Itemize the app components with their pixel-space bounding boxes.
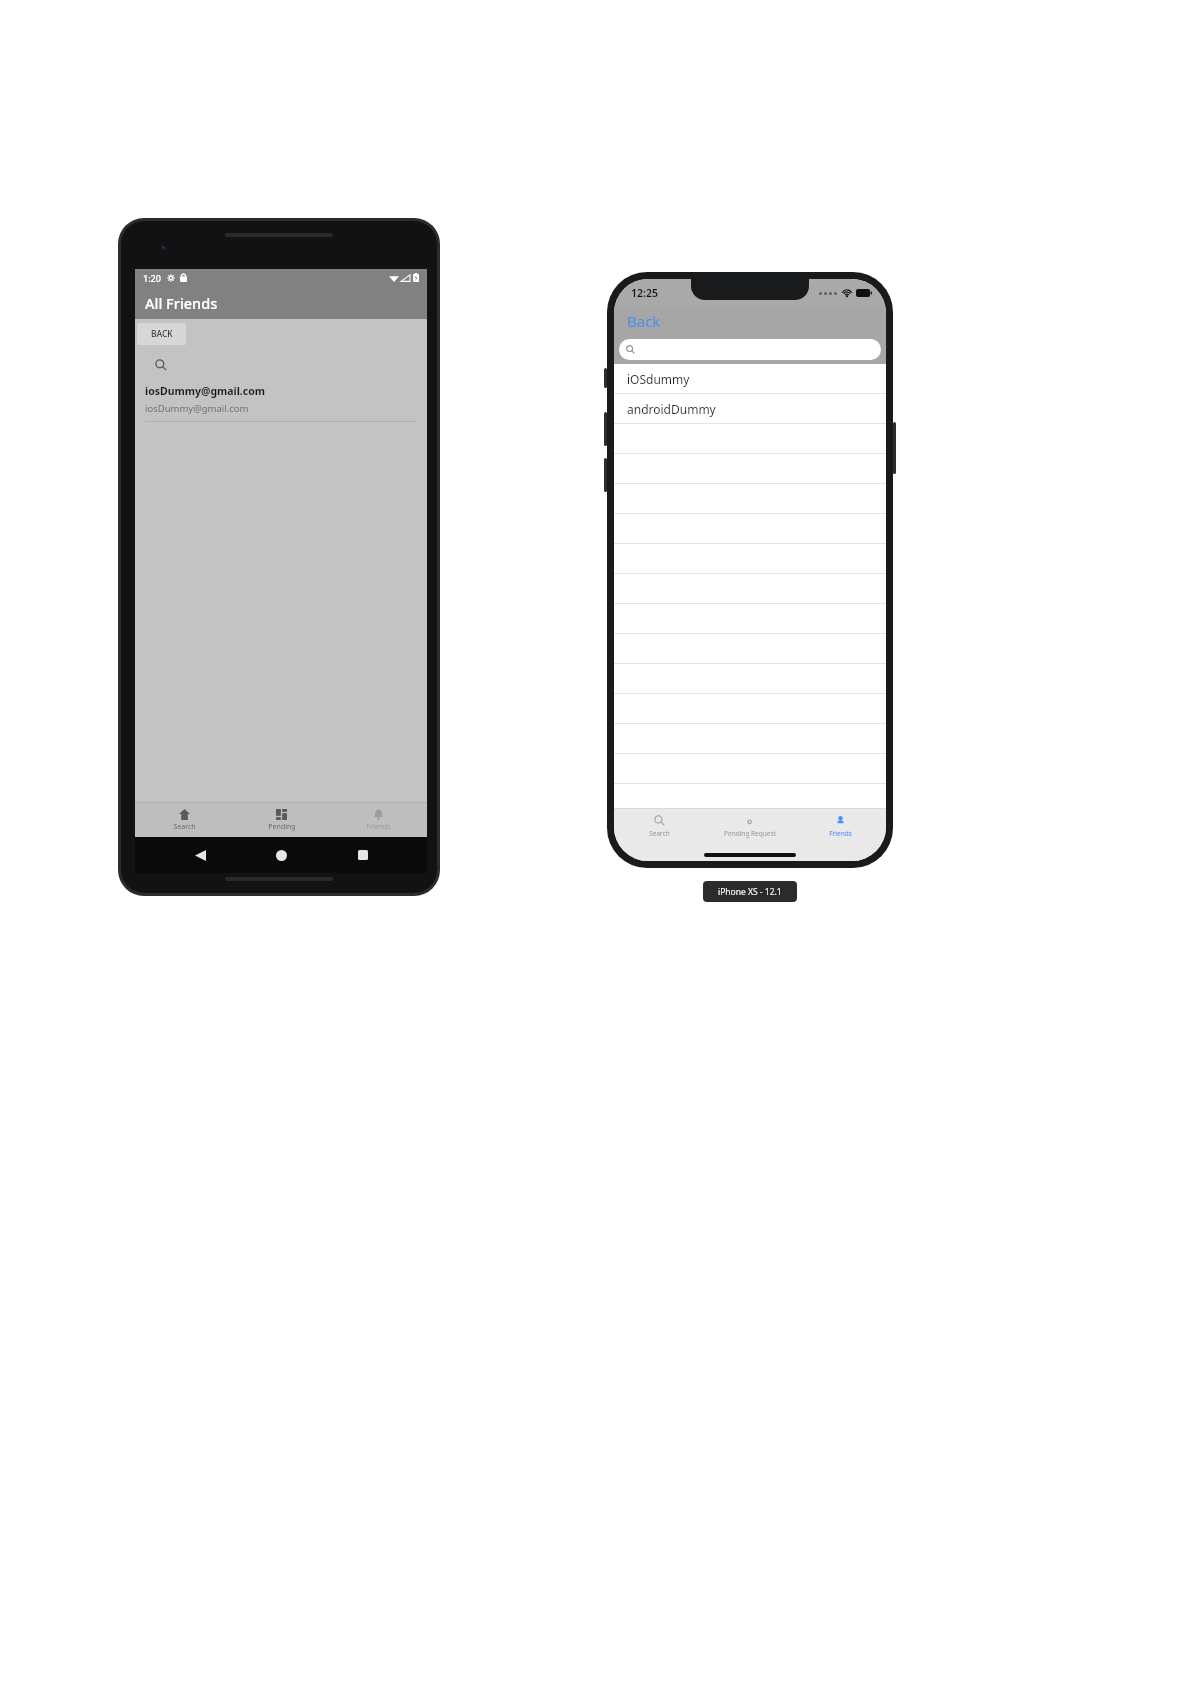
staticText: All Friends [145, 293, 218, 313]
button[interactable] [614, 604, 886, 634]
staticText: BACK [151, 328, 173, 340]
button[interactable]: iosDummy@gmail.com [135, 384, 427, 422]
button[interactable] [614, 724, 886, 754]
staticText: Back [627, 311, 661, 331]
staticText: iOSdummy [627, 371, 690, 387]
staticText: iosDummy@gmail.com [145, 402, 249, 415]
button[interactable] [614, 424, 886, 454]
button[interactable] [619, 339, 881, 360]
button[interactable]: Pending Request [704, 809, 795, 849]
button[interactable] [614, 514, 886, 544]
button[interactable]: Back [183, 838, 217, 872]
button[interactable]: iOSdummy [614, 364, 886, 394]
staticText: iPhone XS - 12.1 [718, 886, 782, 898]
button[interactable]: Friends [330, 803, 427, 837]
staticText: 12:25 [631, 286, 658, 300]
button[interactable]: BACK [137, 323, 186, 345]
button[interactable]: Home [264, 838, 298, 872]
button[interactable] [614, 634, 886, 664]
button[interactable] [614, 664, 886, 694]
staticText: Search [173, 822, 196, 832]
staticText: Pending [268, 822, 296, 832]
button[interactable] [614, 754, 886, 784]
button[interactable]: Friends [795, 809, 886, 849]
button[interactable] [614, 574, 886, 604]
button[interactable] [614, 544, 886, 574]
staticText: Friends [829, 829, 852, 838]
staticText: androidDummy [627, 401, 716, 417]
button[interactable] [614, 694, 886, 724]
button[interactable]: Recents [346, 838, 380, 872]
staticText: Friends [366, 822, 391, 832]
button[interactable]: Back [614, 307, 669, 335]
staticText: iosDummy@gmail.com [145, 384, 265, 398]
staticText: 1:20 [143, 272, 161, 284]
staticText: Search [649, 829, 670, 838]
button[interactable]: Pending [233, 803, 330, 837]
button[interactable]: Search [135, 803, 233, 837]
button[interactable] [614, 484, 886, 514]
staticText: Pending Request [724, 829, 776, 838]
button[interactable]: androidDummy [614, 394, 886, 424]
button[interactable] [614, 454, 886, 484]
button[interactable]: Search [614, 809, 704, 849]
button[interactable]: Search [151, 355, 171, 375]
